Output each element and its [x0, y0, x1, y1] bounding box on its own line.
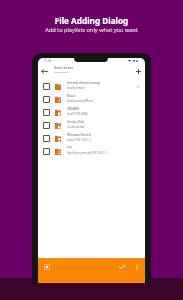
staticText: local/primary/Music [67, 99, 94, 103]
staticText: SBOARD [67, 107, 79, 111]
button[interactable]: Yandex.Disk [38, 119, 145, 132]
button[interactable]: FTP [38, 145, 145, 158]
button[interactable]: Internal shared storage [38, 80, 145, 93]
staticText: File Adding Dialog [0, 15, 183, 26]
staticText: Internal shared storage [67, 81, 101, 85]
staticText: cloud/yandex [67, 125, 85, 129]
staticText: local/13F8-04FA [67, 112, 88, 116]
button[interactable]: Select all [39, 259, 55, 275]
staticText: FTP [67, 146, 73, 150]
button[interactable]: Back [38, 63, 145, 78]
button[interactable]: Back [39, 66, 49, 76]
staticText: ftp://anonymous@192.168.1.2 [67, 151, 107, 155]
button[interactable]: Music [38, 93, 145, 106]
staticText: local/desktop [54, 70, 70, 73]
staticText: smb://192.168.1.2 [67, 138, 91, 142]
button[interactable]: SBOARD [38, 106, 145, 119]
button[interactable]: Confirm selection [114, 259, 130, 275]
staticText: Windows Shared [67, 133, 91, 137]
staticText: Yandex.Disk [67, 120, 84, 124]
staticText: Add to playlists only what you want [0, 26, 183, 34]
button[interactable]: Windows Shared [38, 132, 145, 145]
button[interactable]: More options [129, 259, 145, 275]
staticText: Music [67, 94, 76, 98]
staticText: Home Screen [54, 66, 74, 70]
button[interactable]: Add [133, 66, 143, 76]
staticText: 11:33 [44, 59, 52, 63]
staticText: local/primary [67, 86, 85, 90]
